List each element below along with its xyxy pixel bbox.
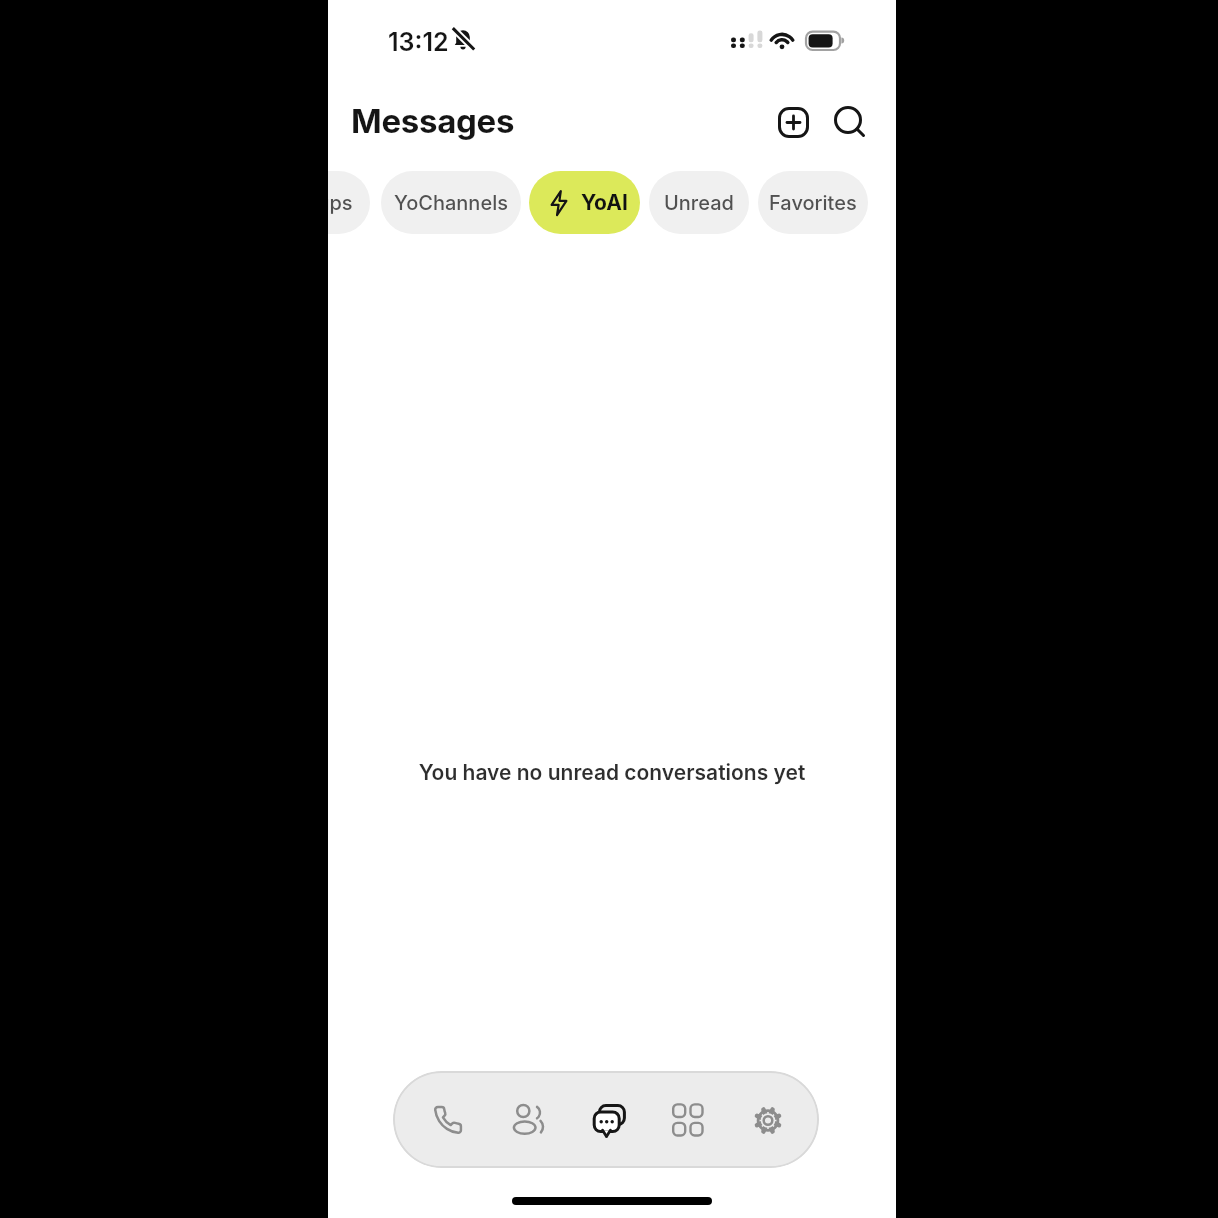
staticText: Groups	[328, 191, 353, 215]
staticText: 13:12	[388, 27, 449, 57]
button[interactable]	[648, 1071, 728, 1168]
button[interactable]: YoAI	[529, 171, 640, 234]
staticText: Favorites	[769, 191, 857, 215]
staticText: You have no unread conversations yet	[328, 760, 896, 785]
button[interactable]: YoChannels	[381, 171, 521, 234]
button[interactable]	[778, 107, 809, 138]
button[interactable]	[488, 1071, 568, 1168]
button[interactable]	[834, 106, 866, 138]
staticText: YoChannels	[394, 191, 508, 215]
button[interactable]	[568, 1071, 648, 1168]
staticText: YoAI	[581, 190, 628, 215]
button[interactable]	[408, 1071, 488, 1168]
staticText: Unread	[664, 191, 734, 215]
button[interactable]: Groups	[328, 171, 370, 234]
button[interactable]: Favorites	[758, 171, 868, 234]
button[interactable]: Unread	[649, 171, 749, 234]
button[interactable]	[728, 1071, 808, 1168]
staticText: Messages	[351, 101, 515, 141]
